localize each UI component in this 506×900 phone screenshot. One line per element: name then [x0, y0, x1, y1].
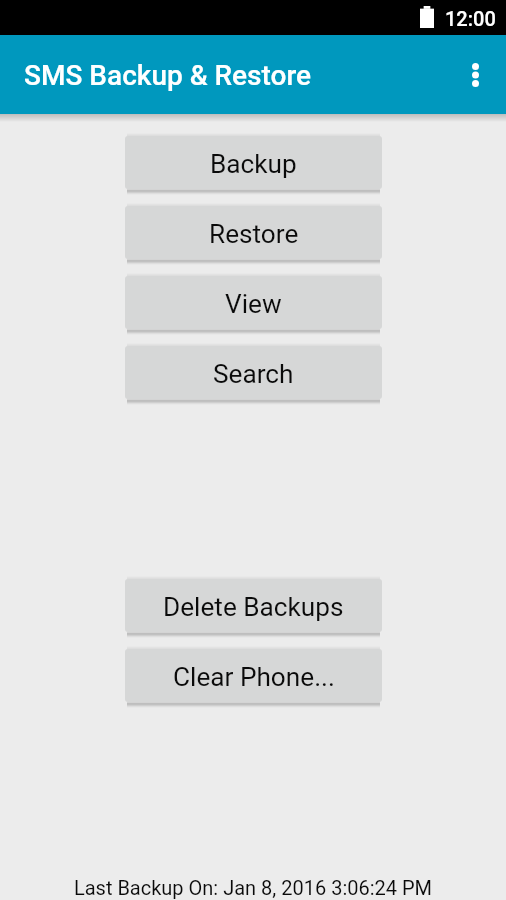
staticText: SMS Backup & Restore: [24, 59, 312, 92]
staticText: Restore: [209, 219, 299, 250]
staticText: Clear Phone...: [173, 662, 335, 693]
button[interactable]: More options: [447, 47, 503, 103]
button[interactable]: Restore: [125, 206, 382, 259]
staticText: Last Backup On: Jan 8, 2016 3:06:24 PM: [0, 876, 506, 899]
staticText: 12:00: [445, 7, 496, 30]
button[interactable]: Clear Phone...: [125, 649, 382, 702]
button[interactable]: Search: [125, 346, 382, 399]
button[interactable]: View: [125, 276, 382, 329]
staticText: Search: [213, 359, 294, 390]
staticText: Backup: [210, 149, 297, 180]
button[interactable]: Backup: [125, 136, 382, 189]
staticText: View: [225, 289, 282, 320]
button[interactable]: Delete Backups: [125, 579, 382, 632]
other: Battery: [420, 6, 434, 28]
staticText: Delete Backups: [163, 592, 344, 623]
